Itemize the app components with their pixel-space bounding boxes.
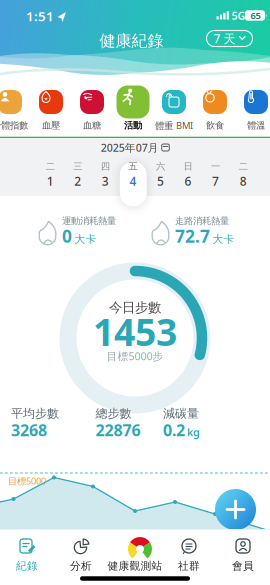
- staticText: 一: [211, 161, 220, 172]
- button[interactable]: 六: [147, 160, 174, 206]
- staticText: 5G: [231, 8, 245, 23]
- button[interactable]: 7 天: [206, 30, 252, 46]
- button[interactable]: 二: [230, 160, 257, 206]
- button[interactable]: 二: [37, 160, 64, 206]
- staticText: 3: [102, 173, 109, 189]
- staticText: 72.7: [175, 224, 210, 247]
- staticText: 五: [128, 161, 137, 172]
- button[interactable]: 健康觀測站: [108, 529, 162, 579]
- staticText: 身體指數: [0, 120, 28, 131]
- button[interactable]: 日: [175, 160, 202, 206]
- staticText: 紀錄: [16, 559, 38, 572]
- staticText: 日: [184, 161, 193, 172]
- staticText: 目標5000步: [106, 349, 163, 363]
- staticText: 8: [240, 173, 247, 189]
- staticText: 運動消耗熱量: [62, 215, 116, 227]
- button[interactable]: [215, 489, 256, 530]
- staticText: 1453: [93, 307, 177, 356]
- staticText: 2: [74, 173, 81, 189]
- button[interactable]: 分析: [54, 529, 108, 579]
- staticText: 平均步數: [11, 406, 59, 421]
- button[interactable]: 三: [64, 160, 91, 206]
- staticText: 6: [185, 173, 192, 189]
- button[interactable]: 體溫: [235, 84, 270, 132]
- staticText: 減碳量: [163, 406, 199, 421]
- staticText: 4: [129, 173, 136, 189]
- staticText: 三: [73, 161, 82, 172]
- staticText: 目標5000: [8, 475, 46, 487]
- staticText: 血壓: [42, 120, 60, 131]
- staticText: 0: [62, 224, 72, 247]
- button[interactable]: 四: [92, 160, 119, 206]
- button[interactable]: 體重 BMI: [153, 84, 194, 132]
- staticText: 走路消耗熱量: [175, 215, 229, 227]
- button[interactable]: 一: [202, 160, 229, 206]
- staticText: 2025年07月: [101, 140, 159, 155]
- staticText: 65: [250, 9, 260, 22]
- button[interactable]: 血糖: [71, 84, 112, 132]
- staticText: 今日步數: [109, 299, 161, 316]
- staticText: 大卡: [74, 233, 96, 246]
- staticText: 5: [157, 173, 164, 189]
- staticText: 體溫: [247, 120, 265, 131]
- button[interactable]: 血壓: [30, 84, 71, 132]
- staticText: 1:51: [26, 7, 54, 25]
- button[interactable]: 五: [119, 160, 146, 206]
- staticText: 六: [156, 161, 165, 172]
- staticText: 二: [239, 161, 248, 172]
- staticText: 3268: [11, 419, 47, 441]
- staticText: 大卡: [212, 233, 234, 246]
- staticText: 社群: [178, 559, 200, 572]
- button[interactable]: 會員: [216, 529, 270, 579]
- button[interactable]: 紀錄: [0, 529, 54, 579]
- staticText: 分析: [70, 559, 92, 572]
- staticText: 22876: [95, 419, 140, 441]
- staticText: 健康觀測站: [107, 559, 162, 572]
- staticText: 飲食: [206, 120, 224, 131]
- button[interactable]: 身體指數: [0, 84, 30, 132]
- staticText: kg: [187, 425, 200, 439]
- staticText: 會員: [232, 559, 254, 572]
- staticText: 1: [47, 173, 54, 189]
- staticText: 健康紀錄: [99, 31, 163, 51]
- staticText: 7 天: [213, 30, 235, 46]
- button[interactable]: 飲食: [194, 84, 235, 132]
- staticText: 體重 BMI: [155, 119, 193, 132]
- staticText: 總步數: [95, 406, 131, 421]
- staticText: 四: [101, 161, 110, 172]
- button[interactable]: 活動: [112, 84, 153, 132]
- staticText: 活動: [124, 120, 142, 131]
- staticText: 二: [46, 161, 55, 172]
- staticText: 血糖: [83, 120, 101, 131]
- staticText: 7: [212, 173, 219, 189]
- staticText: 0.2: [163, 419, 185, 441]
- button[interactable]: 社群: [162, 529, 216, 579]
